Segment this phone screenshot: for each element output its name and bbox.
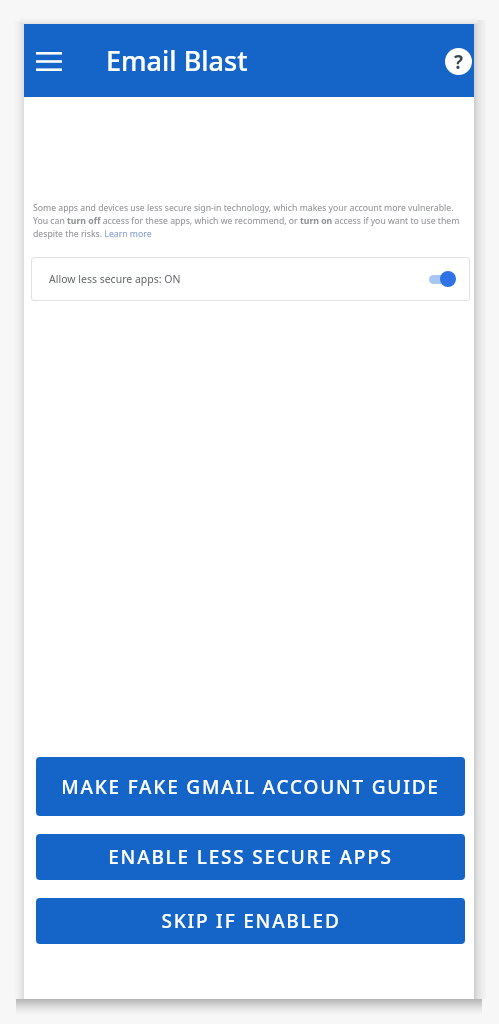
button[interactable]: SKIP IF ENABLED: [36, 898, 465, 944]
button[interactable]: Help: [438, 41, 478, 81]
staticText: MAKE FAKE GMAIL ACCOUNT GUIDE: [61, 774, 440, 800]
staticText: Allow less secure apps: ON: [49, 272, 181, 286]
staticText: ?: [454, 49, 464, 75]
button[interactable]: Allow less secure apps: ON: [31, 257, 470, 301]
staticText: Some apps and devices use less secure si…: [33, 202, 461, 240]
staticText: ENABLE LESS SECURE APPS: [108, 844, 393, 870]
staticText: Email Blast: [106, 42, 248, 79]
button[interactable]: MAKE FAKE GMAIL ACCOUNT GUIDE: [36, 757, 465, 816]
button[interactable]: Menu: [27, 39, 71, 83]
button[interactable]: ENABLE LESS SECURE APPS: [36, 834, 465, 880]
staticText: SKIP IF ENABLED: [161, 908, 341, 934]
